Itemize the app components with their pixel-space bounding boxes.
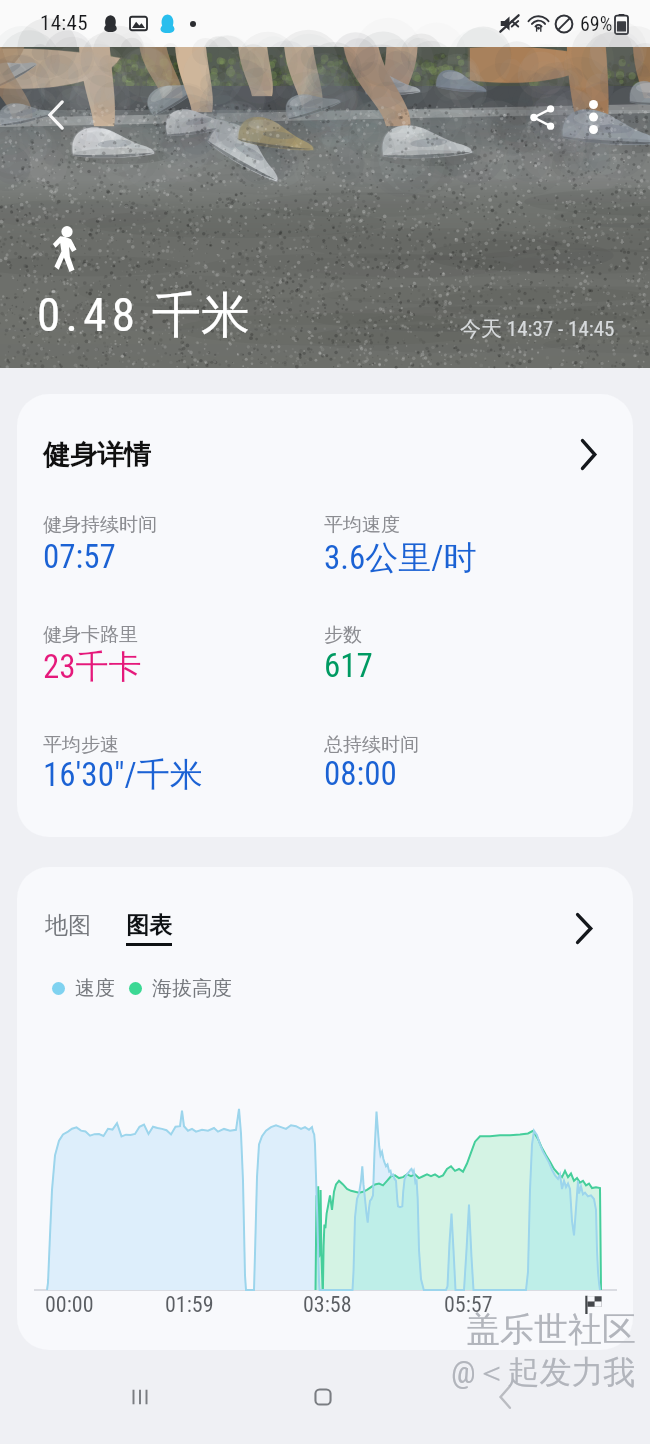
staticText: 健身详情 [43,438,151,472]
staticText: 今天 14:37 - 14:45 [460,316,615,342]
staticText: 海拔高度 [152,976,232,1001]
staticText: 健身持续时间 [43,513,157,537]
staticText: 01:59 [165,1292,214,1318]
staticText: 617 [324,646,373,685]
button[interactable]: 地图 [41,907,95,944]
staticText: 00:00 [45,1292,94,1318]
staticText: 千米 [152,285,250,347]
staticText: 16'30"/千米 [43,754,203,796]
button[interactable]: Home [290,1350,356,1444]
staticText: 03:58 [303,1292,352,1318]
staticText: 平均步速 [43,733,119,757]
staticText: 07:57 [43,537,116,576]
staticText: 3.6公里/时 [324,537,477,579]
button[interactable]: Open chart [569,909,599,947]
staticText: 总持续时间 [324,733,419,757]
staticText: 步数 [324,623,362,647]
staticText: 健身卡路里 [43,623,138,647]
staticText: 14:45 [40,11,88,36]
staticText: 地图 [45,911,91,940]
staticText: 08:00 [324,754,397,793]
button[interactable]: Share [519,94,565,140]
staticText: 盖乐世社区 [466,1308,636,1351]
button[interactable]: Back [472,1350,538,1444]
staticText: @＜起发力我 [451,1352,636,1392]
button[interactable]: Back [32,92,78,138]
staticText: 69% [580,12,613,35]
staticText: 05:57 [444,1292,493,1318]
staticText: 图表 [126,911,172,940]
button[interactable]: 健身详情 [17,394,633,837]
staticText: 23千卡 [43,646,142,688]
staticText: 平均速度 [324,513,400,537]
staticText: 速度 [75,976,115,1001]
button[interactable]: 图表 [122,907,176,950]
button[interactable]: Recents [107,1350,173,1444]
staticText: 0.48 [37,287,141,342]
button[interactable]: More options [570,94,616,140]
